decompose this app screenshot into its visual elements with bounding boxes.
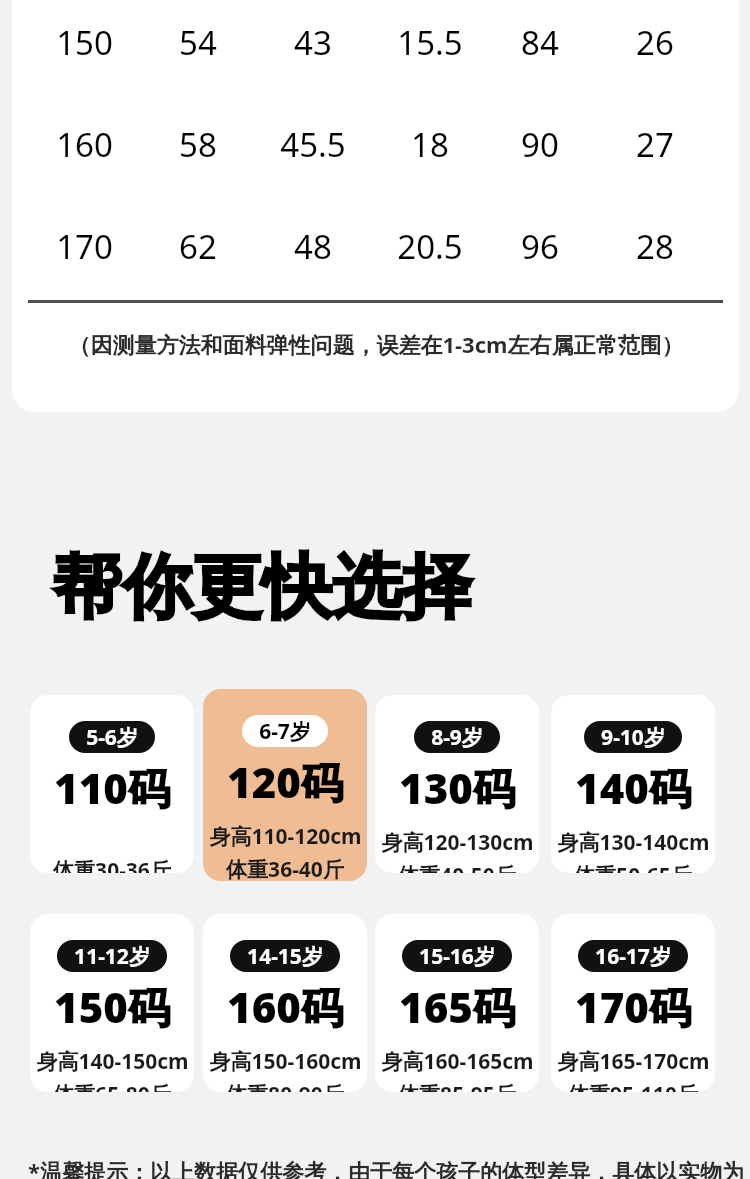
staticText: 90 (521, 122, 559, 167)
staticText: 26 (636, 20, 674, 65)
staticText: 120码 (227, 753, 343, 810)
staticText: 15-16岁 (419, 942, 495, 971)
button[interactable]: 16-17岁 (551, 914, 715, 1092)
button[interactable]: 6-7岁 (203, 689, 367, 881)
staticText: 体重36-40斤 (226, 855, 344, 881)
staticText: 9-10岁 (601, 723, 665, 752)
staticText: 体重30-36斤 (53, 856, 171, 873)
staticText: 体重65-80斤 (53, 1080, 171, 1092)
staticText: 6-7岁 (259, 717, 311, 746)
staticText: 150 (56, 20, 113, 65)
staticText: 48 (294, 224, 332, 269)
button[interactable]: 9-10岁 (551, 695, 715, 873)
button[interactable]: 5-6岁 (30, 695, 194, 873)
staticText: （因测量方法和面料弹性问题，误差在1-3cm左右属正常范围） (68, 329, 684, 359)
staticText: 43 (294, 20, 332, 65)
staticText: 170 (56, 224, 113, 269)
staticText: 165码 (399, 978, 515, 1035)
staticText: 170码 (575, 978, 691, 1035)
staticText: 20.5 (397, 224, 463, 269)
staticText: 11-12岁 (74, 942, 150, 971)
staticText: 160 (56, 122, 113, 167)
staticText: 18 (411, 122, 449, 167)
button[interactable]: 14-15岁 (203, 914, 367, 1092)
staticText: 16-17岁 (595, 942, 671, 971)
staticText: 140码 (575, 759, 691, 816)
staticText: 8-9岁 (431, 723, 483, 752)
staticText: 身高110-120cm (209, 822, 362, 851)
button[interactable]: 15-16岁 (375, 914, 539, 1092)
staticText: 150码 (54, 978, 170, 1035)
staticText: *温馨提示：以上数据仅供参考，由于每个孩子的体型差异，具体以实物为准。 (22, 1156, 750, 1179)
staticText: 身高150-160cm (209, 1047, 362, 1076)
staticText: 15.5 (397, 20, 463, 65)
staticText: 54 (179, 20, 217, 65)
button[interactable]: 8-9岁 (375, 695, 539, 873)
staticText: 身高120-130cm (381, 828, 534, 857)
staticText: 110码 (54, 759, 170, 816)
staticText: 84 (521, 20, 559, 65)
staticText: 身高165-170cm (557, 1047, 710, 1076)
staticText: 体重80-90斤 (226, 1080, 344, 1092)
staticText: 96 (521, 224, 559, 269)
button[interactable]: 11-12岁 (30, 914, 194, 1092)
staticText: 28 (636, 224, 674, 269)
staticText: 体重85-95斤 (398, 1080, 516, 1092)
staticText: 帮你更快选择 (52, 544, 472, 632)
staticText: 5-6岁 (86, 723, 138, 752)
staticText: 58 (179, 122, 217, 167)
staticText: 45.5 (280, 122, 346, 167)
staticText: 160码 (227, 978, 343, 1035)
staticText: 27 (636, 122, 674, 167)
staticText: 62 (179, 224, 217, 269)
staticText: 体重40-50斤 (398, 861, 516, 873)
staticText: 体重95-110斤 (568, 1080, 698, 1092)
staticText: 身高140-150cm (36, 1047, 189, 1076)
staticText: 130码 (399, 759, 515, 816)
staticText: 身高160-165cm (381, 1047, 534, 1076)
staticText: 14-15岁 (247, 942, 323, 971)
staticText: 身高130-140cm (557, 828, 710, 857)
staticText: 体重50-65斤 (574, 861, 692, 873)
